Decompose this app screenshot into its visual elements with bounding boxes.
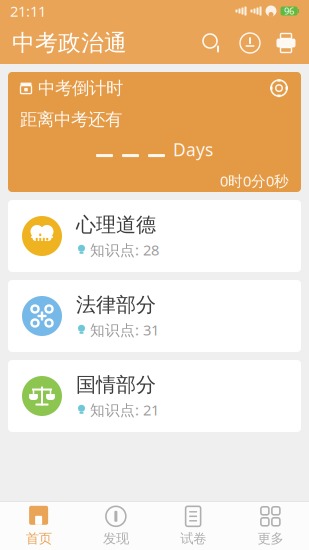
button[interactable]: Search xyxy=(193,23,231,63)
staticText: 中考倒计时 xyxy=(38,77,123,99)
staticText: 21:11 xyxy=(10,1,46,21)
button[interactable]: 首页 xyxy=(0,502,77,550)
staticText: 国情部分 xyxy=(76,372,156,397)
staticText: 法律部分 xyxy=(76,292,156,317)
button[interactable]: 心理道德 xyxy=(8,200,301,272)
button[interactable]: Downloads xyxy=(231,23,269,63)
button[interactable]: 国情部分 xyxy=(8,360,301,432)
staticText: 0时0分0秒 xyxy=(220,171,289,191)
button[interactable]: 更多 xyxy=(232,502,309,550)
staticText: 知识点: 31 xyxy=(90,320,159,339)
button[interactable]: 试卷 xyxy=(154,502,232,550)
staticText: 知识点: 21 xyxy=(90,400,159,419)
staticText: 更多 xyxy=(257,530,283,547)
staticText: Days xyxy=(173,138,213,161)
staticText: 知识点: 28 xyxy=(90,240,159,259)
staticText: 中考政治通 xyxy=(12,29,127,57)
button[interactable]: Settings xyxy=(269,78,289,98)
staticText: 距离中考还有 xyxy=(20,109,122,130)
button[interactable]: 发现 xyxy=(77,502,154,550)
staticText: 发现 xyxy=(103,530,129,547)
staticText: 试卷 xyxy=(180,530,206,547)
staticText: 首页 xyxy=(26,530,52,547)
button[interactable]: Print xyxy=(269,23,303,63)
staticText: 96 xyxy=(284,5,294,17)
staticText: 心理道德 xyxy=(76,212,156,237)
button[interactable]: 法律部分 xyxy=(8,280,301,352)
